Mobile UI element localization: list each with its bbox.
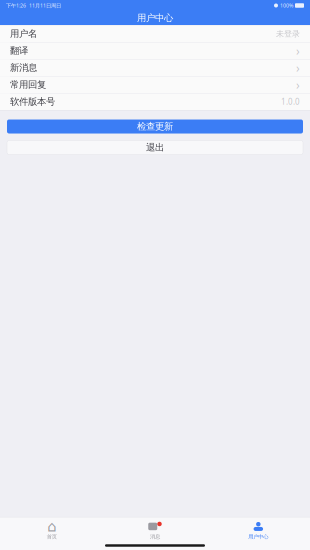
staticText: 软件版本号 bbox=[10, 96, 55, 107]
button[interactable]: 检查更新 bbox=[7, 119, 303, 133]
staticText: 100% bbox=[280, 2, 293, 9]
staticText: 消息 bbox=[150, 533, 160, 540]
staticText: 新消息 bbox=[10, 62, 37, 73]
button[interactable]: 常用回复 bbox=[0, 76, 310, 93]
button[interactable]: 退出 bbox=[7, 140, 303, 154]
staticText: 检查更新 bbox=[137, 121, 173, 132]
button[interactable]: 用户名 bbox=[0, 25, 310, 42]
button[interactable]: 新消息 bbox=[0, 59, 310, 76]
staticText: 常用回复 bbox=[10, 79, 46, 90]
button[interactable]: ⌂ bbox=[0, 521, 103, 540]
staticText: 1.0.0 bbox=[281, 96, 300, 107]
staticText: 用户名 bbox=[10, 28, 37, 39]
staticText: › bbox=[296, 77, 300, 93]
staticText: 用户中心 bbox=[137, 12, 173, 24]
staticText: 退出 bbox=[146, 142, 164, 153]
staticText: › bbox=[296, 60, 300, 76]
button[interactable]: 翻译 bbox=[0, 42, 310, 59]
staticText: 下午1:26 11月11日周日 bbox=[6, 2, 61, 9]
staticText: 未登录 bbox=[276, 29, 300, 39]
staticText: ⌂ bbox=[47, 518, 56, 535]
staticText: 翻译 bbox=[10, 45, 28, 56]
button[interactable]: 消息 bbox=[103, 521, 207, 540]
staticText: › bbox=[296, 43, 300, 59]
button[interactable]: 软件版本号 bbox=[0, 93, 310, 110]
staticText: 用户中心 bbox=[248, 533, 268, 540]
button[interactable]: 用户中心 bbox=[207, 521, 310, 540]
staticText: 首页 bbox=[47, 533, 57, 540]
